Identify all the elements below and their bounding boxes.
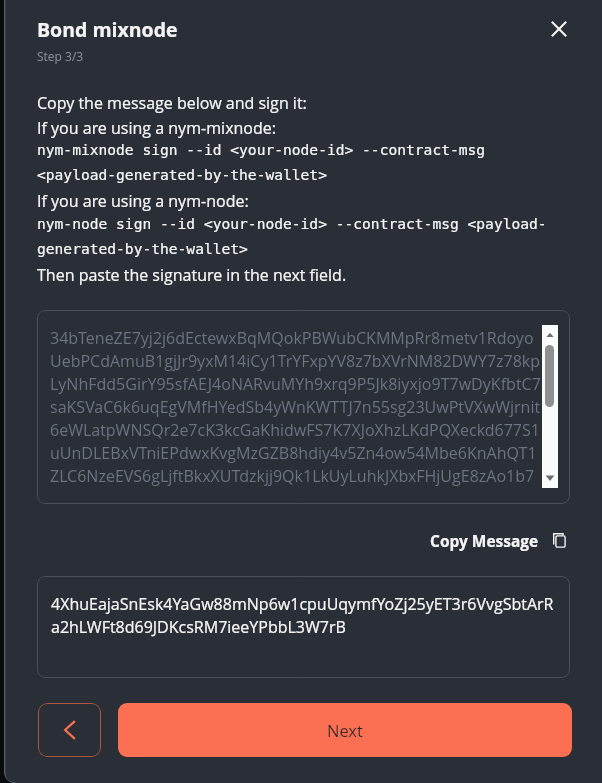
staticText: 4XhuEajaSnEsk4YaGw88mNp6w1cpuUqymfYoZj25…	[51, 593, 556, 638]
button[interactable]: Scroll	[542, 325, 558, 488]
staticText: Copy the message below and sign it:	[37, 92, 307, 114]
staticText: 34bTeneZE7yj2j6dEctewxBqMQokPBWubCKMMpRr…	[50, 327, 543, 487]
button[interactable]: Next	[118, 703, 572, 757]
staticText: Copy Message	[430, 530, 539, 551]
staticText: nym-mixnode sign --id <your-node-id> --c…	[37, 141, 486, 158]
staticText: Step 3/3	[37, 48, 84, 64]
staticText: Bond mixnode	[37, 16, 178, 43]
staticText: nym-node sign --id <your-node-id> --cont…	[37, 215, 547, 232]
staticText: Then paste the signature in the next fie…	[37, 264, 347, 286]
staticText: If you are using a nym-node:	[37, 190, 249, 212]
staticText: <payload-generated-by-the-wallet>	[37, 166, 327, 183]
staticText: Next	[327, 719, 363, 741]
button[interactable]: Copy Message	[430, 530, 566, 551]
staticText: generated-by-the-wallet>	[37, 240, 248, 257]
button[interactable]: Back	[38, 703, 101, 757]
button[interactable]: Close	[545, 15, 573, 43]
staticText: If you are using a nym-mixnode:	[37, 117, 277, 139]
